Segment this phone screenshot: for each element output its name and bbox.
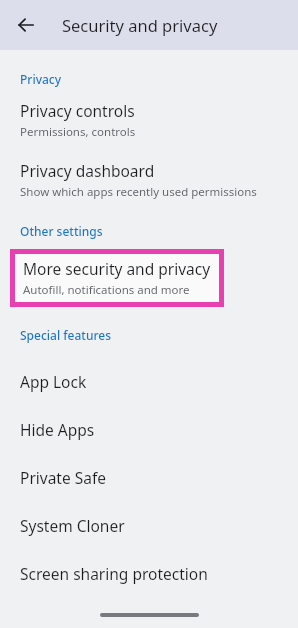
staticText: Hide Apps: [20, 419, 95, 440]
staticText: Private Safe: [20, 467, 106, 488]
button[interactable]: Hide Apps: [0, 405, 298, 453]
staticText: Autofill, notifications and more: [23, 282, 190, 298]
button[interactable]: App Lock: [0, 357, 298, 405]
button[interactable]: More security and privacy: [15, 254, 219, 302]
staticText: Privacy: [20, 71, 62, 87]
button[interactable]: Privacy dashboard: [0, 160, 298, 200]
staticText: Security and privacy: [62, 14, 218, 36]
staticText: Privacy controls: [20, 100, 135, 121]
button[interactable]: System Cloner: [0, 501, 298, 549]
button[interactable]: Back: [12, 11, 40, 39]
staticText: Show which apps recently used permission…: [20, 184, 257, 200]
button[interactable]: Privacy controls: [0, 100, 298, 140]
staticText: App Lock: [20, 371, 87, 392]
staticText: More security and privacy: [23, 258, 211, 279]
staticText: Screen sharing protection: [20, 563, 208, 584]
staticText: Permissions, controls: [20, 124, 136, 140]
button[interactable]: Private Safe: [0, 453, 298, 501]
staticText: Other settings: [20, 223, 103, 239]
button[interactable]: Screen sharing protection: [0, 549, 298, 597]
staticText: System Cloner: [20, 515, 125, 536]
staticText: Special features: [20, 327, 111, 343]
staticText: Privacy dashboard: [20, 160, 155, 181]
